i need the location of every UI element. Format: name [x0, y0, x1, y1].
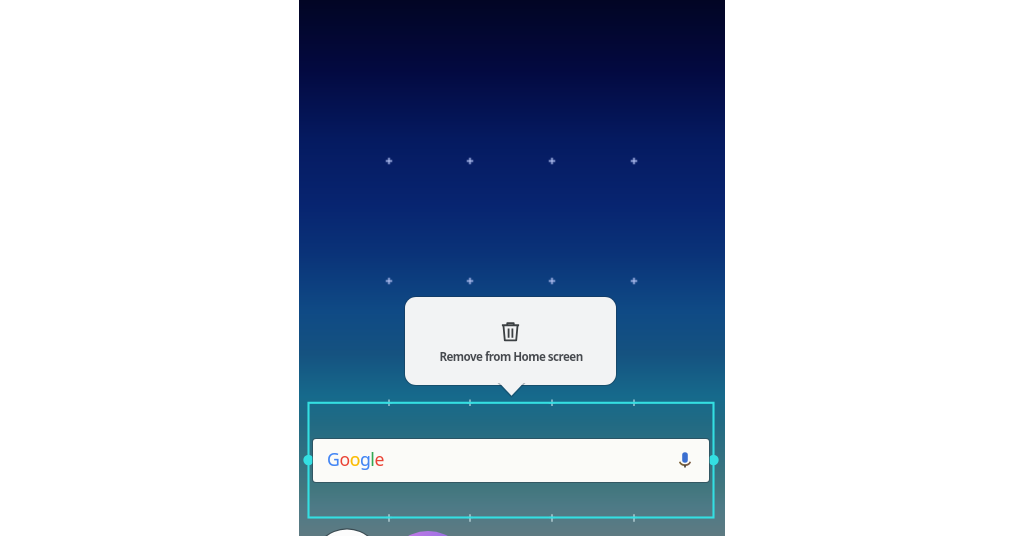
button[interactable]: Remove from Home screen: [405, 297, 616, 385]
button[interactable]: Google: [313, 439, 709, 482]
staticText: Remove from Home screen: [439, 349, 583, 365]
other: Voice search: [675, 450, 695, 470]
staticText: Google: [327, 447, 384, 471]
